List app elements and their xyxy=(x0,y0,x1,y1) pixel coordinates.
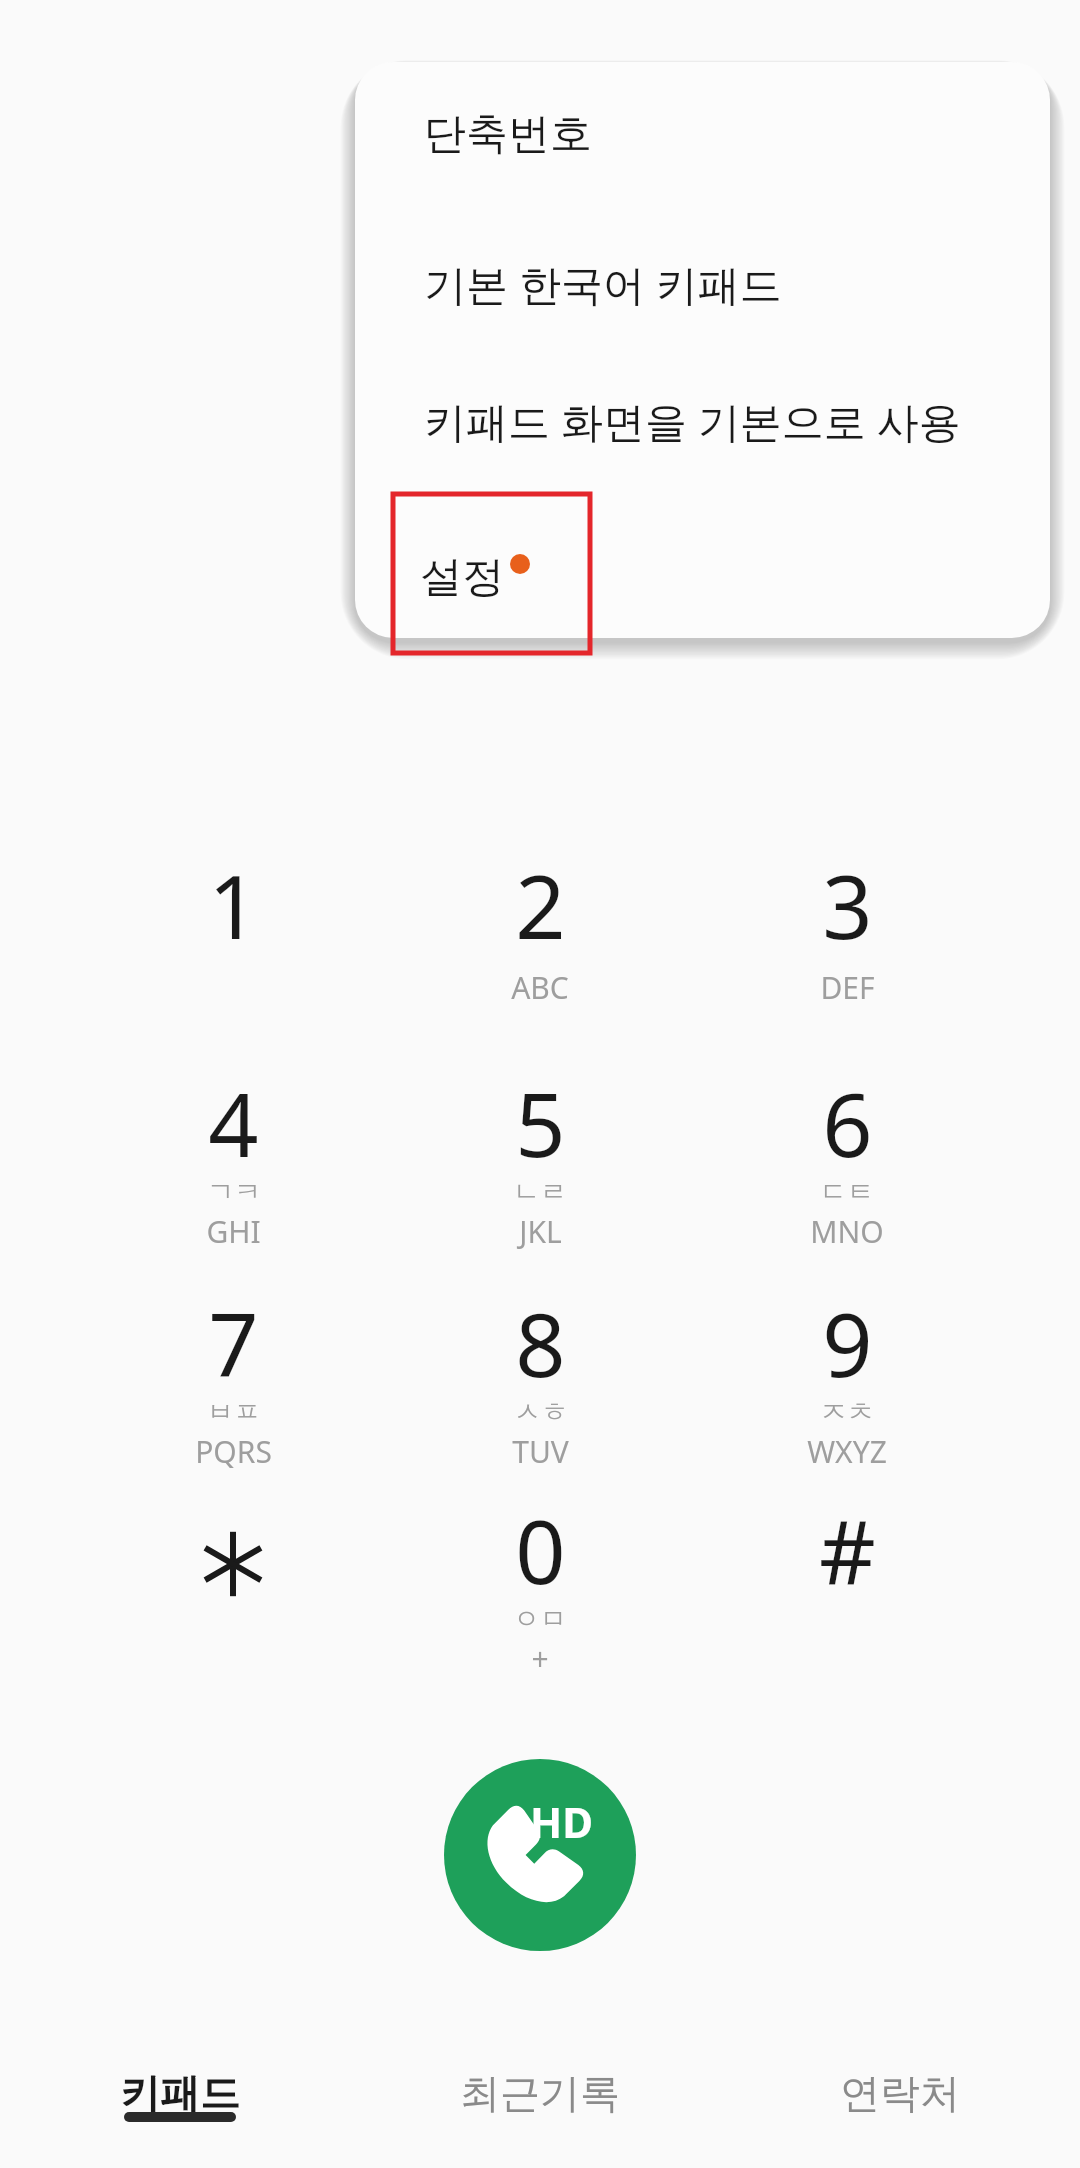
button[interactable]: 설정 xyxy=(393,494,590,653)
staticText: 설정 xyxy=(420,551,504,604)
button[interactable]: 연락처 xyxy=(720,2050,1080,2168)
staticText: 6 xyxy=(822,1063,873,1183)
staticText: DEF xyxy=(820,967,875,1008)
staticText: 2 xyxy=(515,845,566,965)
button[interactable]: 키패드 xyxy=(0,2050,360,2168)
staticText: MNO xyxy=(810,1211,884,1252)
staticText: 5 xyxy=(515,1063,566,1183)
button[interactable]: 단축번호 xyxy=(355,70,1050,198)
button[interactable]: # xyxy=(697,1490,997,1700)
button[interactable]: 2 xyxy=(390,845,690,1055)
staticText: 9 xyxy=(822,1283,873,1403)
staticText: 8 xyxy=(515,1283,566,1403)
staticText: ㅈㅊ xyxy=(820,1395,874,1429)
staticText: ABC xyxy=(511,967,569,1008)
button[interactable]: 1 xyxy=(83,845,383,1055)
button[interactable]: 4 xyxy=(83,1063,383,1273)
staticText: ㄴㄹ xyxy=(513,1175,567,1209)
staticText: ㅅㅎ xyxy=(514,1395,568,1429)
staticText: ㄱㅋ xyxy=(207,1175,261,1209)
staticText: 단축번호 xyxy=(424,108,592,161)
button[interactable]: 최근기록 xyxy=(360,2050,720,2168)
staticText: # xyxy=(819,1490,876,1610)
staticText: 연락처 xyxy=(840,2068,960,2118)
staticText: GHI xyxy=(206,1211,261,1252)
staticText: 기본 한국어 키패드 xyxy=(424,255,782,312)
staticText: ㅇㅁ xyxy=(513,1602,567,1636)
button[interactable]: 3 xyxy=(697,845,997,1055)
staticText: 7 xyxy=(208,1283,259,1403)
button[interactable] xyxy=(83,1490,383,1700)
staticText: 키패드 xyxy=(120,2068,240,2118)
staticText: + xyxy=(531,1638,549,1679)
staticText: PQRS xyxy=(195,1431,272,1472)
staticText: 1 xyxy=(208,845,259,965)
staticText: JKL xyxy=(519,1211,562,1252)
button[interactable]: 8 xyxy=(390,1283,690,1493)
staticText: WXYZ xyxy=(807,1431,887,1472)
staticText: 0 xyxy=(515,1490,566,1610)
staticText: 4 xyxy=(208,1063,259,1183)
button[interactable]: 키패드 화면을 기본으로 사용 xyxy=(355,352,1050,488)
button[interactable]: Call xyxy=(444,1759,636,1951)
staticText: HD xyxy=(530,1793,593,1850)
button[interactable]: 6 xyxy=(697,1063,997,1273)
button[interactable]: 7 xyxy=(83,1283,383,1493)
button[interactable]: 0 xyxy=(390,1490,690,1700)
staticText: 3 xyxy=(822,845,873,965)
staticText: ㅂㅍ xyxy=(207,1395,261,1429)
button[interactable]: 5 xyxy=(390,1063,690,1273)
button[interactable]: 9 xyxy=(697,1283,997,1493)
staticText: TUV xyxy=(512,1431,569,1472)
button[interactable]: 기본 한국어 키패드 xyxy=(355,215,1050,351)
staticText: ㄷㅌ xyxy=(820,1175,874,1209)
staticText: 최근기록 xyxy=(460,2068,620,2118)
staticText: 키패드 화면을 기본으로 사용 xyxy=(424,392,961,449)
